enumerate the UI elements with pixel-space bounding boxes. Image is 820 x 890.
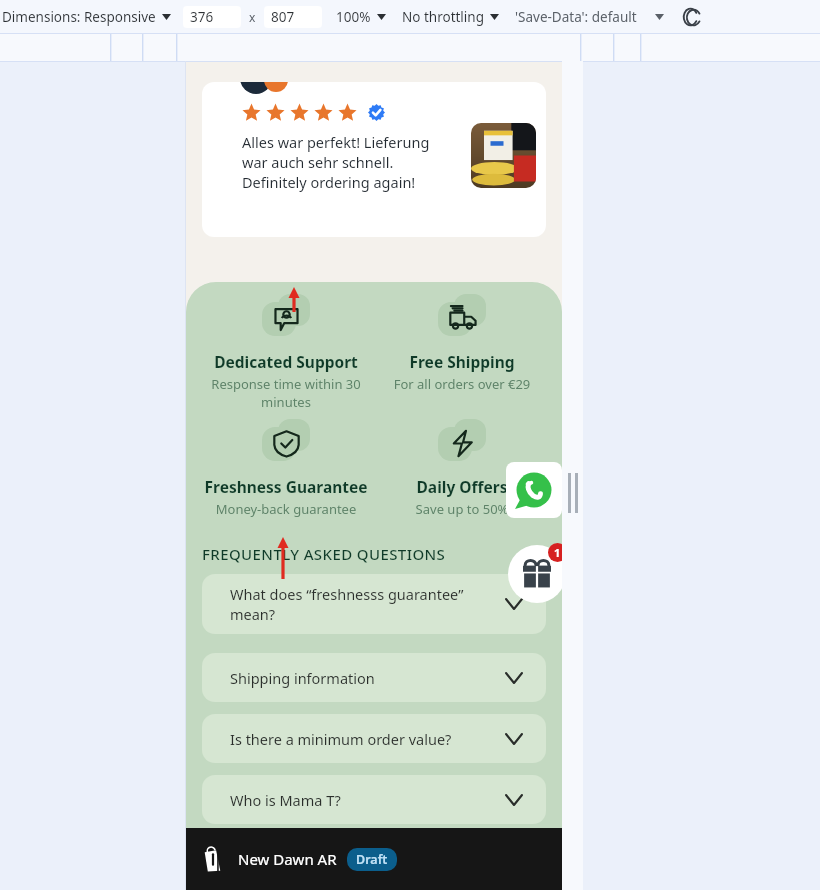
button[interactable]: 807 [264, 6, 322, 28]
staticText: 100% [336, 8, 371, 26]
button[interactable]: WhatsApp [506, 462, 562, 518]
button[interactable]: Freshness Guarantee [190, 417, 382, 518]
staticText: Save up to 50% [366, 500, 558, 518]
staticText: Definitely ordering again! [242, 172, 416, 192]
button[interactable]: Who is Mama T? [202, 775, 546, 824]
staticText: 1 [554, 545, 561, 560]
button[interactable]: 376 [183, 6, 241, 28]
staticText: What does “freshnesss guarantee” [230, 584, 464, 604]
button[interactable]: New Dawn AR [186, 828, 562, 890]
button[interactable]: Alles war perfekt! Lieferung [202, 82, 546, 237]
staticText: 376 [190, 8, 214, 26]
staticText: minutes [190, 393, 382, 411]
button[interactable]: What does “freshnesss guarantee” [202, 574, 546, 634]
staticText: 'Save-Data': default [515, 8, 637, 26]
staticText: Is there a minimum order value? [230, 729, 452, 749]
button[interactable]: Dimensions: Responsive [0, 8, 173, 26]
staticText: 807 [271, 8, 295, 26]
staticText: x [249, 9, 256, 25]
staticText: mean? [230, 604, 276, 624]
button[interactable]: Daily Offers [366, 417, 558, 518]
button[interactable]: Gift rewards [508, 545, 566, 603]
button[interactable] [655, 14, 664, 20]
button[interactable]: Rotate [678, 4, 704, 30]
staticText: Daily Offers [366, 476, 558, 497]
staticText: Money-back guarantee [190, 500, 382, 518]
button[interactable]: Shipping information [202, 653, 546, 702]
staticText: Freshness Guarantee [190, 476, 382, 497]
staticText: Shipping information [230, 668, 375, 688]
staticText: No throttling [402, 8, 484, 26]
staticText: For all orders over €29 [366, 375, 558, 393]
staticText: Dedicated Support [190, 351, 382, 372]
button[interactable]: Is there a minimum order value? [202, 714, 546, 763]
button[interactable]: No throttling [402, 8, 499, 26]
staticText: Alles war perfekt! Lieferung [242, 132, 430, 152]
button[interactable]: Free Shipping [366, 292, 558, 393]
staticText: Draft [356, 851, 388, 868]
staticText: Who is Mama T? [230, 790, 341, 810]
staticText: Dimensions: Responsive [2, 8, 156, 26]
staticText: war auch sehr schnell. [242, 152, 394, 172]
staticText: New Dawn AR [238, 849, 337, 869]
staticText: Response time within 30 [190, 375, 382, 393]
staticText: FREQUENTLY ASKED QUESTIONS [202, 544, 446, 564]
button[interactable]: Dedicated Support [190, 292, 382, 411]
button[interactable]: 100% [336, 8, 386, 26]
staticText: Free Shipping [366, 351, 558, 372]
